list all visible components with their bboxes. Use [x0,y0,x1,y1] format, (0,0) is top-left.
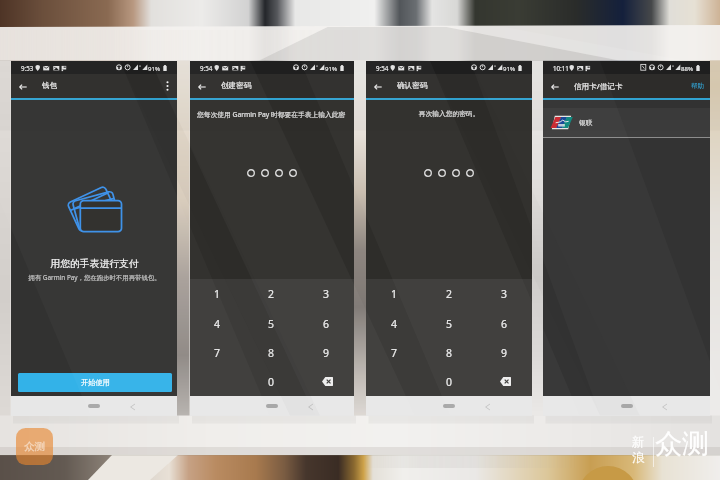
button[interactable]: Back [660,402,669,411]
button[interactable]: Home [88,404,100,408]
staticText: 众测 [24,440,45,453]
button[interactable]: 8 [422,338,477,367]
staticText: 9:54 [376,64,389,72]
staticText: 5 [446,317,453,331]
staticText: 9:53 [21,64,34,72]
staticText: 拥有 Garmin Pay，您在跑步时不用再带钱包。 [28,273,161,282]
staticText: 5 [268,317,275,331]
button[interactable]: Home [621,404,633,408]
button[interactable]: More options [160,79,174,93]
staticText: 确认密码 [397,81,428,91]
other: Delete [498,376,512,387]
button[interactable]: Back [483,402,492,411]
staticText: 众测 [655,427,709,461]
button[interactable]: Back [370,79,385,94]
button[interactable]: 9 [299,338,354,367]
staticText: 1 [391,287,398,301]
button[interactable]: 0 [422,367,477,396]
staticText: 8 [268,346,275,360]
button[interactable]: 2 [422,279,477,309]
button[interactable]: Delete [477,367,532,396]
staticText: 91% [503,64,516,72]
staticText: 4 [214,317,221,331]
staticText: 帮助 [691,82,705,90]
staticText: 9:54 [200,64,213,72]
button[interactable]: 7 [366,338,422,367]
staticText: 创建密码 [221,81,252,91]
button[interactable]: 5 [422,309,477,338]
staticText: 银联 [579,119,593,127]
button[interactable]: 3 [477,279,532,309]
staticText: 新浪 [632,434,652,466]
button[interactable]: Back [306,402,315,411]
button[interactable]: 4 [190,309,244,338]
staticText: 开始使用 [81,378,110,387]
button[interactable]: 1 [190,279,244,309]
staticText: 3 [323,287,330,301]
button[interactable]: 5 [244,309,299,338]
button[interactable]: 0 [244,367,299,396]
button[interactable]: 6 [477,309,532,338]
staticText: 用您的手表进行支付 [50,258,139,270]
staticText: 信用卡/借记卡 [574,81,623,91]
staticText: 再次输入您的密码。 [366,110,532,119]
button[interactable]: 4 [366,309,422,338]
button[interactable]: 帮助 [689,79,707,93]
button[interactable]: 2 [244,279,299,309]
staticText: 1 [214,287,221,301]
button[interactable]: 7 [190,338,244,367]
button[interactable]: 银联 [543,108,710,137]
staticText: 91% [148,64,161,72]
button[interactable]: 1 [366,279,422,309]
button[interactable]: Back [547,79,562,94]
staticText: 9 [501,346,508,360]
staticText: 9 [323,346,330,360]
staticText: 2 [268,287,275,301]
button[interactable]: Home [266,404,278,408]
button[interactable]: Back [194,79,209,94]
button[interactable]: 8 [244,338,299,367]
button[interactable]: 开始使用 [18,373,172,392]
staticText: 6 [501,317,508,331]
staticText: 0 [446,375,453,389]
staticText: 0 [268,375,275,389]
staticText: 10:11 [553,64,569,72]
other: Delete [320,376,334,387]
button[interactable]: Back [15,79,30,94]
button[interactable]: Delete [299,367,354,396]
staticText: 8 [446,346,453,360]
staticText: 7 [214,346,221,360]
staticText: 4 [391,317,398,331]
staticText: 91% [325,64,338,72]
staticText: 88% [681,64,694,72]
staticText: 3 [501,287,508,301]
button[interactable]: Back [128,402,137,411]
staticText: 7 [391,346,398,360]
button[interactable]: 9 [477,338,532,367]
button[interactable]: Home [443,404,455,408]
staticText: 钱包 [42,81,58,91]
staticText: 2 [446,287,453,301]
staticText: 您每次使用 Garmin Pay 时都要在手表上输入此密码。 [197,110,353,119]
staticText: 6 [323,317,330,331]
button[interactable]: 3 [299,279,354,309]
button[interactable]: 6 [299,309,354,338]
